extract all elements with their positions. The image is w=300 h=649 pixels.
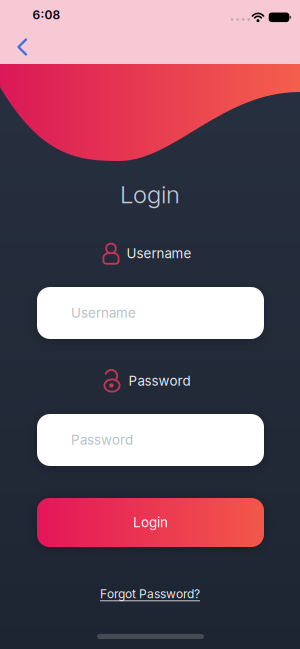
staticText: 6:08 bbox=[32, 8, 60, 22]
button[interactable]: Login bbox=[37, 498, 264, 547]
staticText: Forgot Password? bbox=[100, 587, 200, 601]
button[interactable]: Back bbox=[3, 31, 39, 62]
staticText: Username bbox=[126, 246, 191, 261]
staticText: Login bbox=[133, 515, 168, 530]
staticText: Username bbox=[71, 305, 136, 321]
staticText: Password bbox=[71, 432, 133, 448]
staticText: Login bbox=[120, 180, 180, 209]
button[interactable]: Forgot Password? bbox=[100, 587, 200, 601]
staticText: Password bbox=[128, 373, 190, 389]
